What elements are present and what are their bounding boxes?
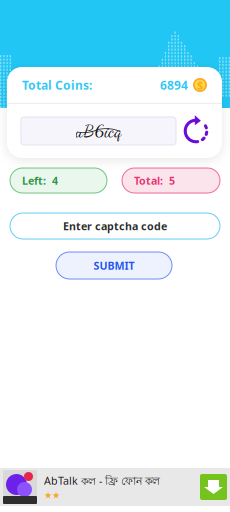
button[interactable]: Left: 4 bbox=[10, 168, 107, 193]
button[interactable]: SUBMIT bbox=[56, 252, 172, 279]
staticText: Left: 4 bbox=[22, 173, 58, 188]
staticText: uB6icq bbox=[75, 121, 121, 141]
button[interactable]: Refresh captcha bbox=[182, 117, 210, 145]
staticText: Enter captcha code bbox=[63, 219, 167, 233]
button[interactable]: Total: 5 bbox=[122, 168, 220, 193]
staticText: AbTalk কল - ফ্রি ফোন কল bbox=[44, 473, 160, 489]
staticText: Total: 5 bbox=[134, 173, 175, 188]
staticText: $ bbox=[197, 78, 203, 92]
button[interactable]: Enter captcha code bbox=[10, 213, 220, 239]
staticText: 6894 bbox=[160, 77, 188, 93]
button[interactable]: Install bbox=[200, 474, 227, 500]
staticText: SUBMIT bbox=[93, 258, 134, 273]
staticText: Total Coins: bbox=[22, 77, 92, 93]
staticText: ★★ bbox=[44, 490, 60, 501]
